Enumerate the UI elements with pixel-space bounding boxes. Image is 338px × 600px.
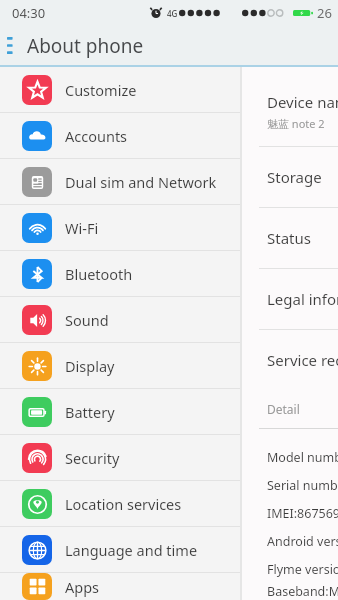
staticText: 04:30 (12, 4, 46, 22)
staticText: Location services (65, 494, 182, 514)
staticText: Wi-Fi (65, 218, 99, 238)
button[interactable]: Language and time (0, 527, 240, 572)
button[interactable]: Accounts (0, 113, 240, 158)
staticText: Accounts (65, 126, 128, 146)
button[interactable]: Bluetooth (0, 251, 240, 296)
staticText: Legal information (267, 289, 338, 309)
staticText: Storage (267, 167, 322, 187)
staticText: 魅蓝 note 2 (267, 116, 325, 131)
button[interactable]: Sound (0, 297, 240, 342)
staticText: Serial number: (267, 477, 338, 494)
staticText: Apps (65, 577, 100, 597)
button[interactable]: Menu (0, 31, 19, 60)
staticText: Dual sim and Network (65, 172, 217, 192)
button[interactable]: Customize (0, 67, 240, 112)
staticText: Customize (65, 80, 137, 100)
staticText: Baseband:MOLY (267, 583, 338, 600)
staticText: Model number:m (267, 449, 338, 466)
staticText: Detail (267, 401, 300, 417)
button[interactable]: Apps (0, 573, 240, 600)
staticText: IMEI:867569023 (267, 505, 338, 522)
staticText: Flyme version: (267, 561, 338, 578)
button[interactable]: Display (0, 343, 240, 388)
staticText: Sound (65, 310, 109, 330)
staticText: Android version (267, 533, 338, 550)
button[interactable]: Service record (242, 330, 338, 390)
button[interactable]: Storage (242, 147, 338, 207)
staticText: 4G (167, 8, 178, 19)
button[interactable]: Device name (242, 67, 338, 146)
button[interactable]: Security (0, 435, 240, 480)
button[interactable]: Legal information (242, 269, 338, 329)
staticText: Service record (267, 350, 338, 370)
button[interactable]: Status (242, 208, 338, 268)
staticText: 26 (317, 4, 332, 22)
staticText: Status (267, 228, 311, 248)
button[interactable]: Location services (0, 481, 240, 526)
staticText: Battery (65, 402, 115, 422)
staticText: About phone (27, 33, 144, 59)
staticText: Security (65, 448, 120, 468)
staticText: Bluetooth (65, 264, 133, 284)
staticText: Language and time (65, 540, 198, 560)
staticText: Display (65, 356, 115, 376)
button[interactable]: Battery (0, 389, 240, 434)
button[interactable]: Wi-Fi (0, 205, 240, 250)
button[interactable]: Dual sim and Network (0, 159, 240, 204)
staticText: Device name (267, 92, 338, 112)
